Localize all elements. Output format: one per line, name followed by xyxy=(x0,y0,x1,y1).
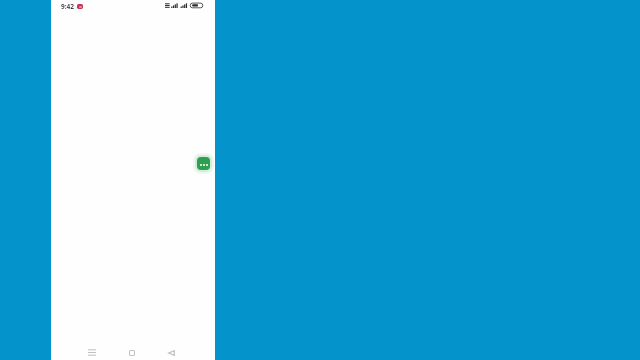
button[interactable]: More options xyxy=(197,157,210,170)
staticText: 9:42 xyxy=(61,2,74,11)
button[interactable] xyxy=(51,13,215,336)
button[interactable]: Recent apps xyxy=(84,344,100,360)
button[interactable]: Home xyxy=(124,345,140,360)
button[interactable]: Back xyxy=(163,345,179,360)
